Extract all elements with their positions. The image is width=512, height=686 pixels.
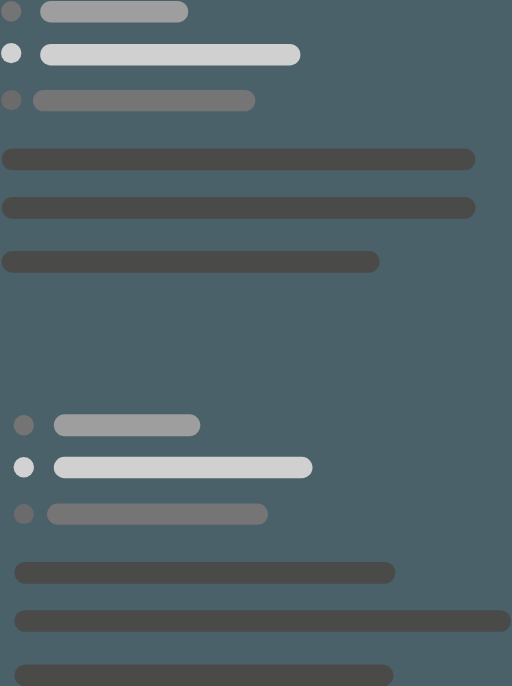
button[interactable]: Loading item 6 xyxy=(0,503,512,529)
button[interactable]: Loading paragraph 1 xyxy=(0,148,512,274)
button[interactable]: Loading item 1 xyxy=(0,0,512,42)
button[interactable]: Loading item 5 xyxy=(0,456,512,503)
button[interactable]: Loading item 3 xyxy=(0,89,512,116)
button[interactable]: Loading item 2 xyxy=(0,42,512,89)
button[interactable]: Loading paragraph 2 xyxy=(0,561,512,686)
button[interactable]: Loading item 4 xyxy=(0,413,512,456)
